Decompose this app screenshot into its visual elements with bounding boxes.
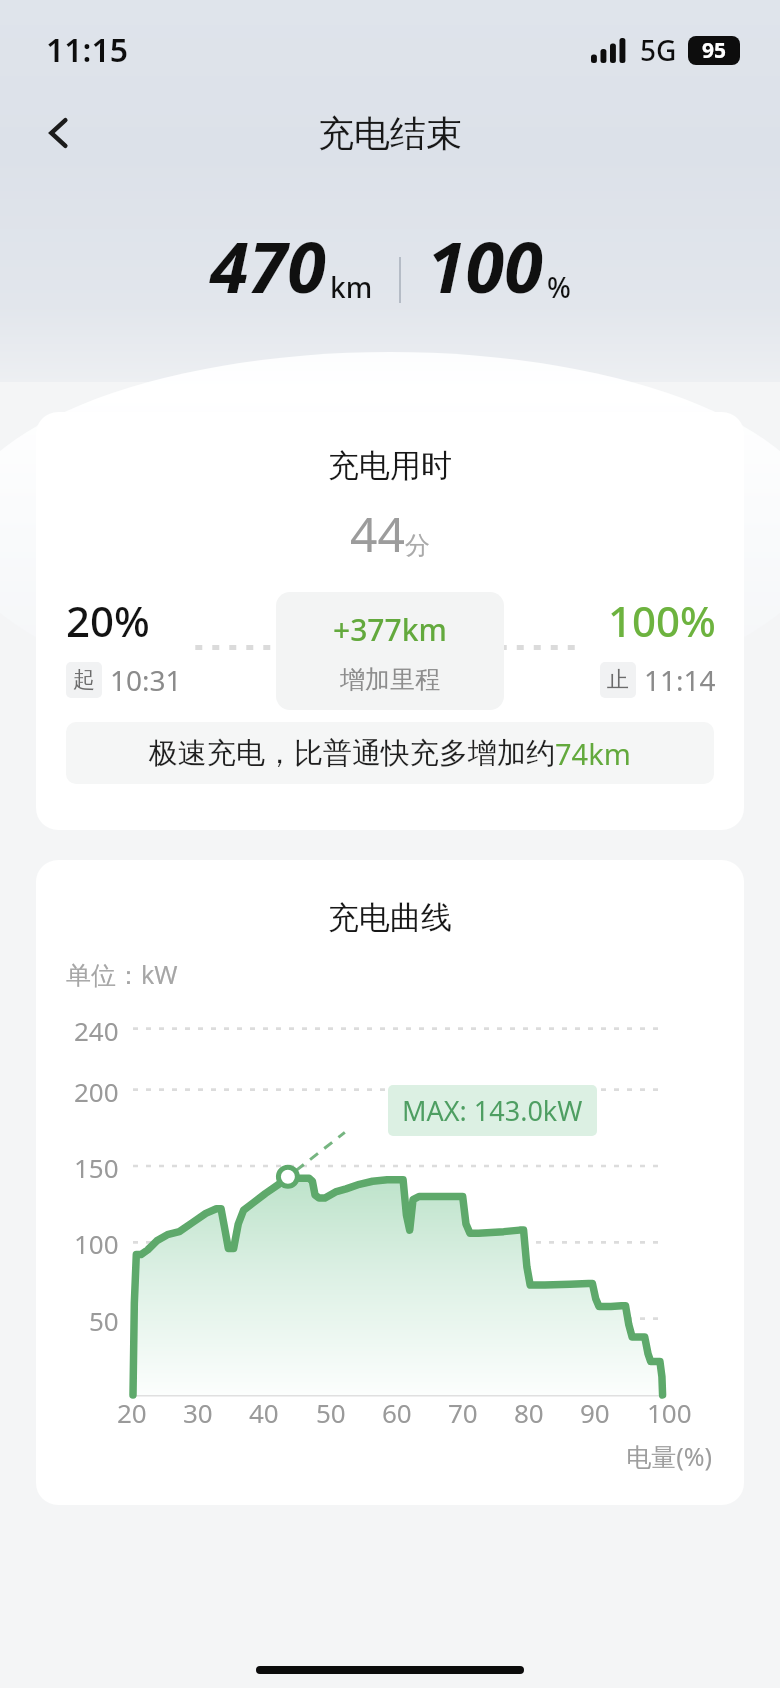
staticText: 470 [210, 218, 326, 313]
staticText: 充电结束 [318, 111, 462, 156]
staticText: 150 [74, 1150, 119, 1185]
staticText: 充电用时 [36, 446, 744, 485]
staticText: 电量(%) [36, 1439, 712, 1473]
staticText: 起 [73, 666, 95, 694]
staticText: 100 [647, 1395, 692, 1430]
staticText: +377km [333, 609, 447, 650]
staticText: 5G [640, 31, 677, 69]
staticText: 95 [702, 36, 727, 65]
staticText: 11:14 [644, 661, 716, 699]
staticText: 200 [74, 1074, 119, 1109]
staticText: 74km [555, 734, 631, 773]
staticText: 20% [66, 592, 150, 649]
staticText: 40 [249, 1395, 279, 1430]
staticText: km [330, 268, 373, 306]
staticText: 单位：kW [66, 957, 178, 991]
staticText: 60 [382, 1395, 412, 1430]
staticText: 止 [607, 666, 629, 694]
staticText: 90 [580, 1395, 610, 1430]
staticText: 充电曲线 [36, 898, 744, 937]
staticText: 20 [117, 1395, 147, 1430]
staticText: 10:31 [110, 661, 182, 699]
staticText: 240 [74, 1013, 119, 1048]
button[interactable]: 充电用时 [36, 412, 744, 830]
staticText: 100% [608, 592, 716, 649]
staticText: 70 [448, 1395, 478, 1430]
staticText: 极速充电，比普通快充多增加约 [149, 735, 555, 772]
staticText: 分 [405, 530, 430, 561]
staticText: 100 [427, 218, 543, 313]
staticText: % [547, 268, 571, 306]
staticText: 50 [89, 1303, 119, 1338]
staticText: MAX: 143.0kW [402, 1092, 583, 1129]
staticText: 50 [316, 1395, 346, 1430]
button[interactable]: 充电曲线 [36, 860, 744, 1505]
button[interactable]: Back [26, 100, 92, 166]
staticText: 30 [183, 1395, 213, 1430]
staticText: 80 [514, 1395, 544, 1430]
staticText: 44 [350, 501, 405, 566]
staticText: 100 [74, 1226, 119, 1261]
staticText: 增加里程 [340, 664, 440, 693]
staticText: 11:15 [46, 28, 129, 72]
